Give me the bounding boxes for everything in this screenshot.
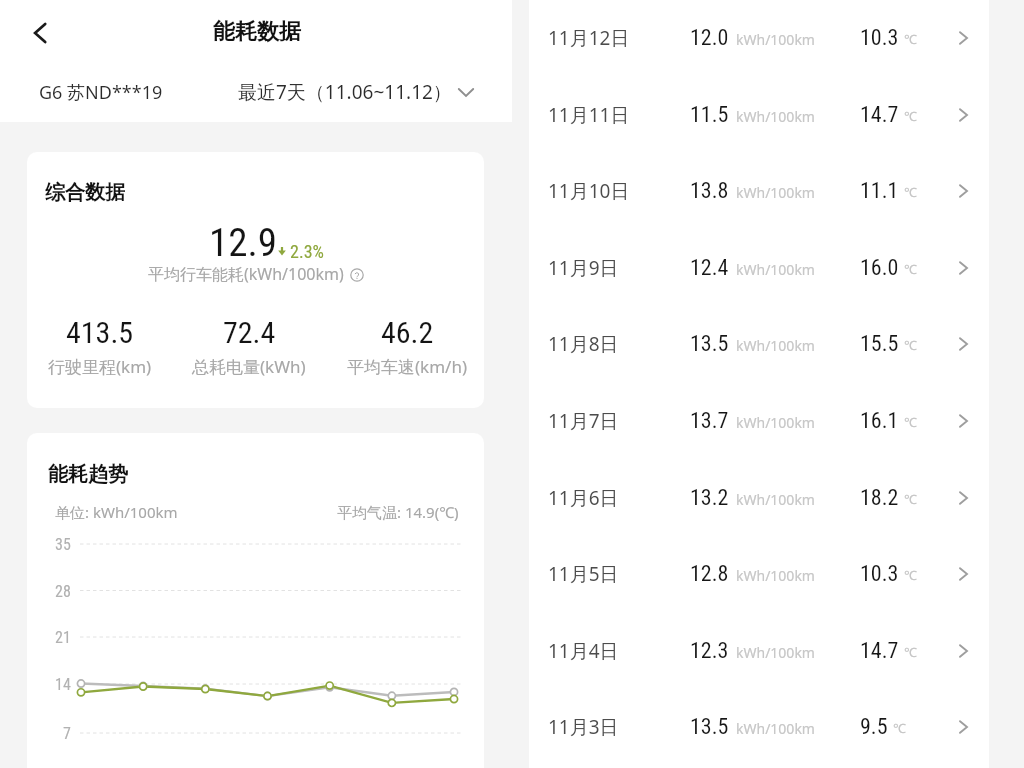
staticText: 16.0 — [860, 255, 899, 281]
staticText: ℃ — [904, 566, 917, 584]
staticText: 综合数据 — [45, 180, 125, 202]
staticText: 平均车速(km/h) — [347, 355, 468, 378]
staticText: 11月10日 — [548, 178, 630, 204]
staticText: 11月7日 — [548, 408, 619, 434]
staticText: 11.5 — [690, 102, 729, 128]
staticText: 13.7 — [690, 408, 729, 434]
staticText: 11月9日 — [548, 255, 619, 281]
staticText: 平均行车能耗(kWh/100km) — [148, 263, 344, 285]
staticText: 18.2 — [860, 485, 899, 511]
staticText: 11月4日 — [548, 638, 619, 664]
staticText: kWh/100km — [736, 413, 815, 432]
button[interactable]: 11月10日 — [529, 153, 989, 229]
staticText: 14 — [55, 675, 71, 694]
staticText: kWh/100km — [736, 107, 815, 126]
staticText: kWh/100km — [736, 490, 815, 509]
staticText: ℃ — [904, 413, 917, 431]
staticText: ℃ — [904, 336, 917, 354]
staticText: G6 苏ND***19 — [39, 80, 163, 102]
staticText: 13.5 — [690, 331, 729, 357]
staticText: ℃ — [904, 107, 917, 125]
staticText: 11月8日 — [548, 331, 619, 357]
staticText: 14.7 — [860, 102, 899, 128]
staticText: 16.1 — [860, 408, 899, 434]
staticText: 12.9 — [209, 220, 278, 266]
staticText: 35 — [55, 535, 71, 554]
staticText: 72.4 — [223, 315, 276, 345]
staticText: 能耗数据 — [213, 18, 301, 46]
button[interactable]: 11月4日 — [529, 613, 989, 689]
staticText: kWh/100km — [736, 566, 815, 585]
staticText: ℃ — [904, 490, 917, 508]
button[interactable]: 11月9日 — [529, 230, 989, 306]
staticText: 14.7 — [860, 638, 899, 664]
staticText: ℃ — [904, 30, 917, 48]
button[interactable]: Back — [18, 11, 62, 55]
staticText: ℃ — [904, 260, 917, 278]
button[interactable]: 11月7日 — [529, 383, 989, 459]
staticText: ℃ — [904, 183, 917, 201]
staticText: 能耗趋势 — [48, 462, 128, 484]
button[interactable]: 11月12日 — [529, 0, 989, 76]
staticText: 46.2 — [381, 315, 434, 345]
staticText: kWh/100km — [736, 30, 815, 49]
staticText: 10.3 — [860, 561, 899, 587]
staticText: 13.8 — [690, 178, 729, 204]
staticText: kWh/100km — [736, 719, 815, 738]
staticText: 11月3日 — [548, 714, 619, 740]
button[interactable]: 11月3日 — [529, 689, 989, 765]
button[interactable]: 最近7天（11.06~11.12） — [238, 75, 476, 109]
staticText: 总耗电量(kWh) — [192, 355, 306, 378]
staticText: kWh/100km — [736, 336, 815, 355]
staticText: 11.1 — [860, 178, 899, 204]
staticText: 11月5日 — [548, 561, 619, 587]
staticText: 28 — [55, 582, 71, 601]
staticText: 12.4 — [690, 255, 729, 281]
staticText: 15.5 — [860, 331, 899, 357]
staticText: 11月11日 — [548, 102, 630, 128]
staticText: 最近7天（11.06~11.12） — [238, 79, 452, 105]
staticText: 11月12日 — [548, 25, 630, 51]
staticText: 2.3% — [290, 241, 324, 262]
staticText: kWh/100km — [736, 183, 815, 202]
staticText: kWh/100km — [736, 260, 815, 279]
staticText: 10.3 — [860, 25, 899, 51]
staticText: kWh/100km — [736, 643, 815, 662]
staticText: 平均气温: 14.9(℃) — [337, 502, 459, 522]
staticText: 行驶里程(km) — [48, 355, 152, 378]
staticText: 11月6日 — [548, 485, 619, 511]
staticText: 12.3 — [690, 638, 729, 664]
staticText: 21 — [55, 628, 71, 647]
button[interactable]: 11月6日 — [529, 460, 989, 536]
staticText: 9.5 — [860, 714, 888, 740]
staticText: 12.8 — [690, 561, 729, 587]
staticText: 12.0 — [690, 25, 729, 51]
staticText: ℃ — [893, 719, 906, 737]
button[interactable]: 11月5日 — [529, 536, 989, 612]
staticText: 7 — [63, 724, 71, 743]
staticText: 单位: kWh/100km — [55, 502, 178, 522]
staticText: 13.2 — [690, 485, 729, 511]
button[interactable]: 11月8日 — [529, 306, 989, 382]
staticText: ℃ — [904, 643, 917, 661]
staticText: 413.5 — [66, 315, 134, 345]
button[interactable]: 11月11日 — [529, 77, 989, 153]
staticText: 13.5 — [690, 714, 729, 740]
